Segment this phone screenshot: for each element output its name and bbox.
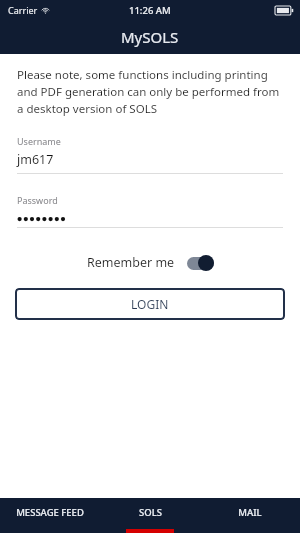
staticText: Carrier [8,4,38,16]
staticText: MESSAGE FEED [16,506,84,519]
staticText: MySOLS [121,27,179,47]
button[interactable]: MESSAGE FEED [0,498,100,533]
staticText: LOGIN [131,296,169,312]
staticText: MAIL [238,506,262,519]
button[interactable]: Password [17,194,283,228]
button[interactable]: MAIL [200,498,300,533]
staticText: jm617 [17,151,54,168]
staticText: Remember me [87,254,175,271]
other: Remember me toggle [187,255,214,271]
button[interactable]: Username [17,135,283,174]
staticText: Please note, some functions including pr… [17,67,286,117]
button[interactable]: SOLS [100,498,200,533]
staticText: Username [17,135,61,147]
staticText: Password [17,194,58,206]
staticText: SOLS [139,506,162,519]
staticText: 11:26 AM [129,4,171,17]
button[interactable]: LOGIN [15,288,285,320]
button[interactable]: Remember me [87,254,214,271]
